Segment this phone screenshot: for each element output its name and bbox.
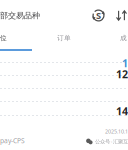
button[interactable]: Refresh [92,9,105,22]
staticText: 12 [116,67,128,81]
button[interactable]: 位 [0,34,7,42]
button[interactable]: 订单 [57,34,71,42]
staticText: 公众号 · 汇聚互 [95,138,128,145]
staticText: 订单 [57,34,71,42]
staticText: pay-CPS [0,136,25,145]
staticText: 1 [122,56,128,70]
staticText: 14 [116,104,128,118]
staticText: 位 [0,34,7,42]
button[interactable]: Sort [116,10,127,21]
staticText: S [96,9,101,22]
staticText: 部交易品种 [0,11,40,20]
staticText: 2025.10.1 [105,128,128,135]
staticText: 成 [120,34,127,42]
button[interactable]: 成 [120,34,128,42]
